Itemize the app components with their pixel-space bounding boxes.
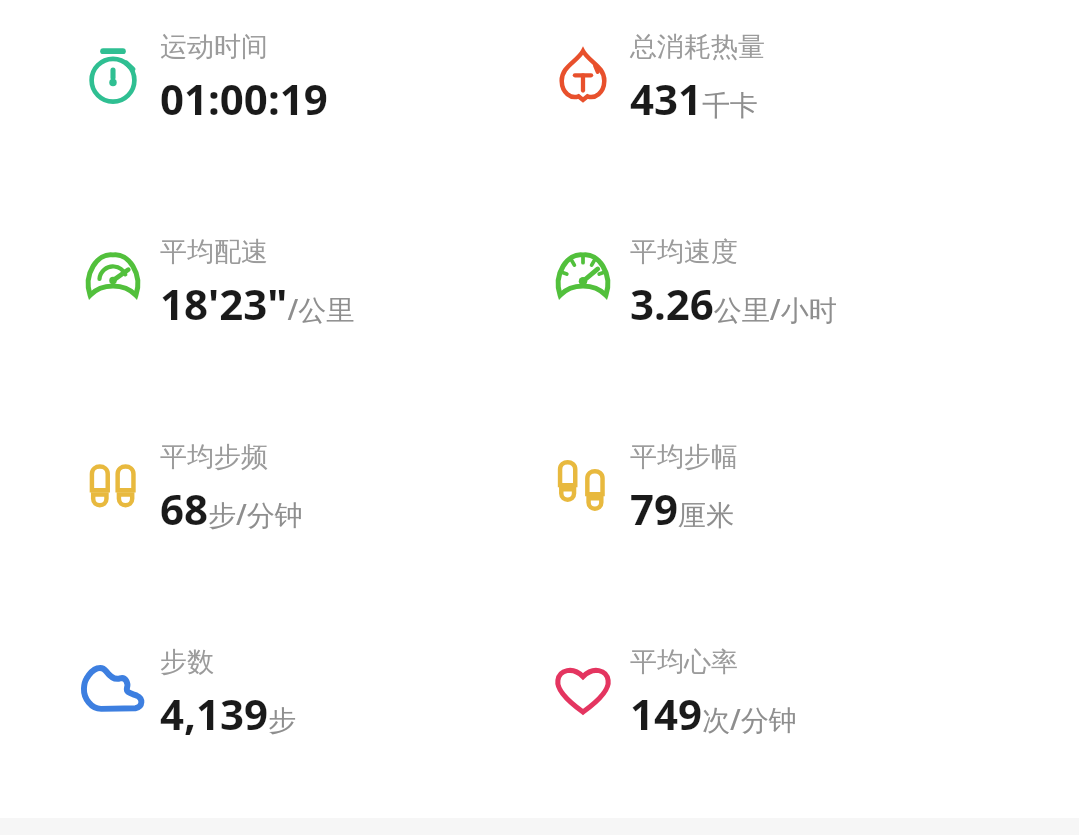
staticText: 步数	[160, 645, 214, 679]
staticText: 平均步频	[160, 440, 268, 474]
staticText: 平均心率	[630, 645, 738, 679]
other: Average stride	[535, 432, 630, 537]
staticText: 运动时间	[160, 30, 268, 64]
button[interactable]: Duration	[65, 22, 328, 127]
button[interactable]: Average heart rate	[535, 637, 797, 742]
other: Average heart rate	[535, 637, 630, 742]
staticText: 79厘米	[630, 480, 735, 537]
staticText: 01:00:19	[160, 70, 328, 127]
other: Average cadence	[65, 432, 160, 537]
staticText: 431千卡	[630, 70, 759, 127]
button[interactable]: Calories	[535, 22, 765, 127]
button[interactable]: Average speed	[535, 227, 837, 332]
other: Steps	[65, 637, 160, 742]
other: Average pace	[65, 227, 160, 332]
staticText: 平均配速	[160, 235, 268, 269]
staticText: 3.26公里/小时	[630, 275, 837, 332]
other: Duration	[65, 22, 160, 127]
staticText: 4,139步	[160, 685, 297, 742]
other: Average speed	[535, 227, 630, 332]
other: Calories	[535, 22, 630, 127]
staticText: 18'23"/公里	[160, 275, 355, 332]
button[interactable]: Average cadence	[65, 432, 303, 537]
staticText: 总消耗热量	[630, 30, 765, 64]
staticText: 149次/分钟	[630, 685, 797, 742]
button[interactable]: Average pace	[65, 227, 355, 332]
button[interactable]: Steps	[65, 637, 297, 742]
staticText: 平均速度	[630, 235, 738, 269]
button[interactable]: Average stride	[535, 432, 738, 537]
staticText: 68步/分钟	[160, 480, 303, 537]
staticText: 平均步幅	[630, 440, 738, 474]
